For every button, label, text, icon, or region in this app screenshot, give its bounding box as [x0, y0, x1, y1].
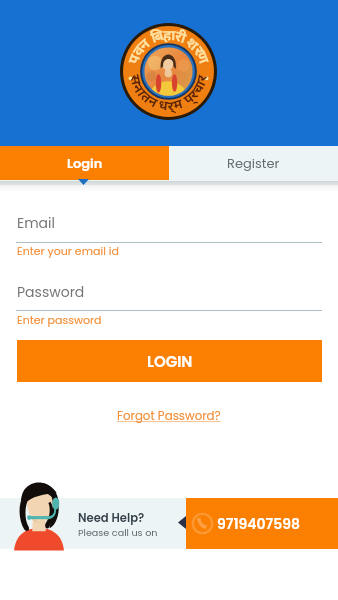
staticText: 9719407598	[217, 514, 301, 534]
staticText: Please call us on	[78, 526, 158, 539]
staticText: Login	[67, 154, 103, 172]
other: Call 9719407598	[192, 513, 213, 534]
staticText: Enter your email id	[17, 243, 119, 258]
staticText: Need Help?	[78, 510, 145, 526]
staticText: Email	[17, 213, 55, 233]
button[interactable]: Forgot Password?	[117, 408, 221, 425]
button[interactable]: Call 9719407598	[186, 498, 338, 549]
button[interactable]: Login	[0, 146, 169, 180]
button[interactable]: LOGIN	[17, 340, 322, 382]
button[interactable]: Register	[169, 146, 338, 180]
staticText: Password	[17, 282, 85, 302]
staticText: Register	[227, 154, 280, 172]
staticText: Enter password	[17, 312, 102, 327]
staticText: LOGIN	[147, 351, 193, 372]
